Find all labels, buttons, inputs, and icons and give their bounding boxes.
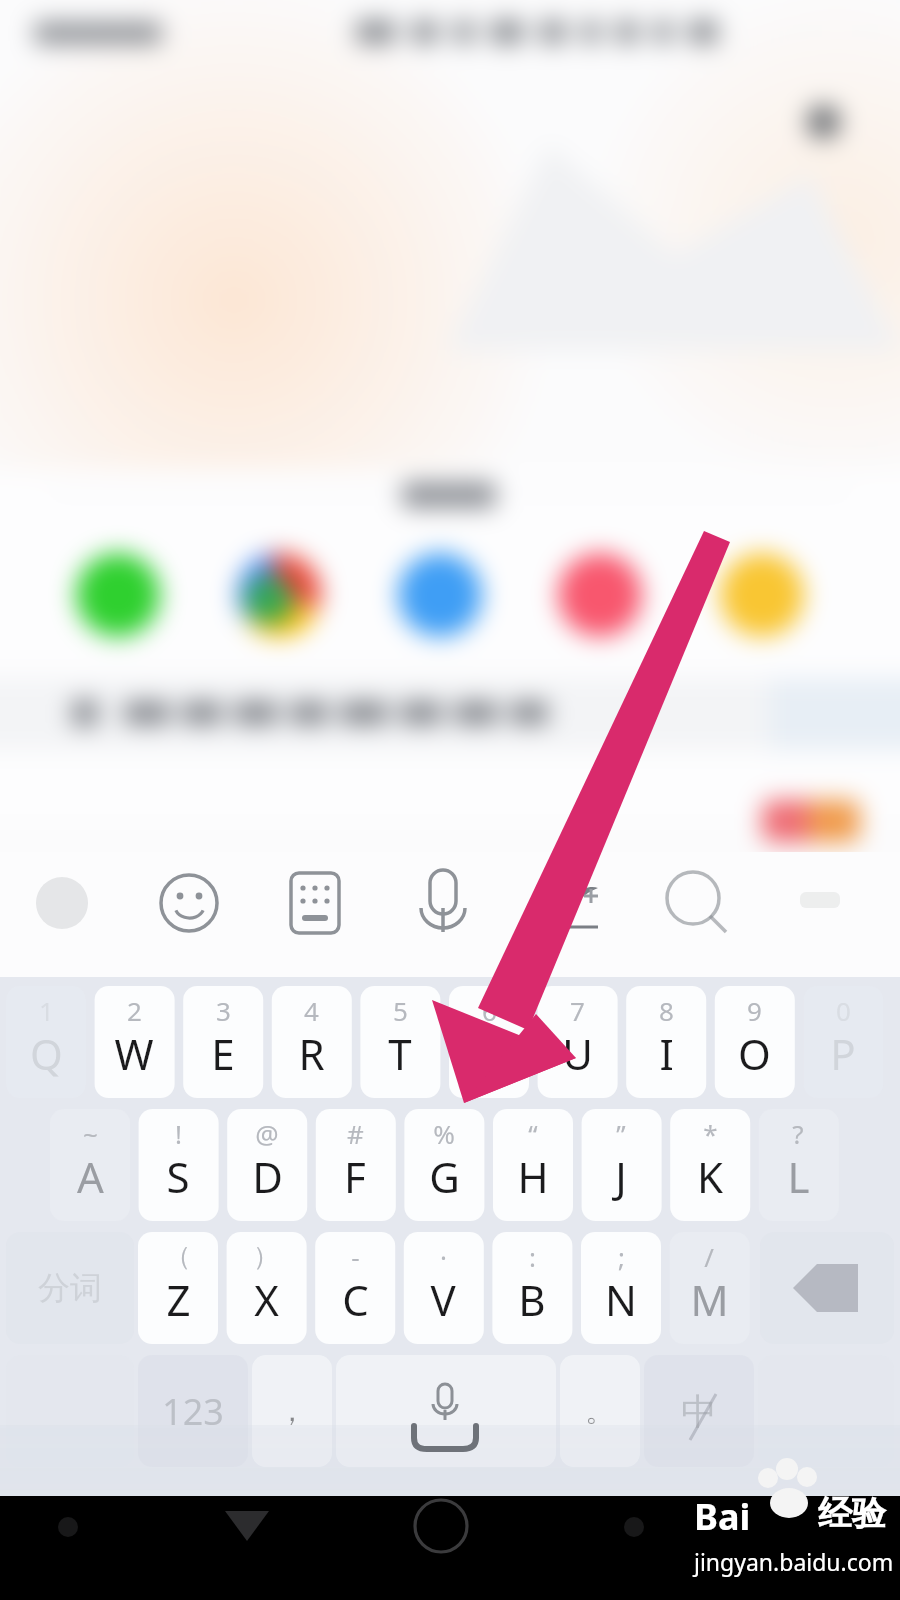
staticText: X [254,1271,279,1328]
button[interactable]: Y [449,986,529,1098]
button[interactable]: Home [391,1496,491,1600]
button[interactable]: Keyboard layout [271,855,359,975]
staticText: O [738,1025,771,1082]
staticText: 5 [393,993,408,1027]
button[interactable]: 中 [644,1355,754,1467]
button[interactable]: S [138,1109,218,1221]
button[interactable]: D [227,1109,307,1221]
staticText: W [114,1025,154,1082]
staticText: U [562,1025,593,1082]
staticText: K [697,1148,723,1205]
staticText: Bai [694,1492,751,1541]
button[interactable]: V [403,1232,483,1344]
button[interactable]: Space [336,1355,556,1467]
button[interactable]: Search [653,855,741,975]
staticText: H [517,1148,549,1205]
button[interactable]: U [537,986,617,1098]
staticText: Z [166,1271,191,1328]
button[interactable]: 。 [560,1355,640,1467]
staticText: C [342,1271,369,1328]
staticText: # [347,1116,364,1150]
staticText: P [830,1025,856,1082]
button[interactable]: ， [252,1355,332,1467]
staticText: 中 [681,1389,717,1434]
staticText: ， [277,1392,307,1430]
staticText: 123 [162,1387,224,1436]
staticText: R [298,1025,325,1082]
staticText: 6 [482,993,497,1027]
staticText: （ [165,1240,191,1273]
staticText: I [659,1025,674,1082]
button[interactable]: Menu [584,1496,684,1600]
staticText: G [429,1148,460,1205]
staticText: M [690,1271,729,1328]
staticText: ） [253,1240,279,1273]
button[interactable]: Handwriting [530,855,618,975]
staticText: 分词 [38,1268,102,1308]
button[interactable]: 123 [138,1355,248,1467]
staticText: : [529,1239,536,1273]
button[interactable]: L [758,1109,838,1221]
button[interactable]: J [581,1109,661,1221]
staticText: T [388,1025,412,1082]
staticText: % [433,1116,455,1150]
staticText: 4 [304,993,319,1027]
staticText: jingyan.baidu.com [694,1546,894,1577]
button[interactable]: P [803,986,883,1098]
staticText: 9 [747,993,762,1027]
staticText: ~ [83,1116,98,1150]
staticText: Q [30,1025,63,1082]
button[interactable]: Voice input [399,855,487,975]
button[interactable]: X [226,1232,306,1344]
button[interactable]: W [94,986,174,1098]
button[interactable]: More [776,855,864,975]
button[interactable]: R [271,986,351,1098]
button[interactable]: Settings [18,855,106,975]
staticText: N [605,1271,637,1328]
button[interactable]: Delete [760,1232,894,1344]
button[interactable]: A [50,1109,130,1221]
staticText: 7 [570,993,585,1027]
button[interactable]: Emoji [145,855,233,975]
staticText: V [430,1271,456,1328]
staticText: / [704,1239,714,1273]
staticText: “ [528,1116,538,1150]
button[interactable]: N [581,1232,661,1344]
button[interactable]: Back [18,1496,118,1600]
button[interactable]: Recents [197,1496,297,1600]
button[interactable]: F [315,1109,395,1221]
button[interactable]: K [670,1109,750,1221]
staticText: 2 [127,993,142,1027]
staticText: 1 [39,993,54,1027]
button[interactable]: H [493,1109,573,1221]
staticText: J [615,1148,627,1205]
button[interactable]: I [626,986,706,1098]
staticText: B [518,1271,546,1328]
button[interactable]: O [714,986,794,1098]
staticText: 0 [836,993,851,1027]
staticText: F [344,1148,366,1205]
staticText: L [787,1148,810,1205]
staticText: ! [175,1116,182,1150]
button[interactable]: T [360,986,440,1098]
button[interactable]: Z [138,1232,218,1344]
button[interactable]: 分词 [6,1232,134,1344]
button[interactable]: B [492,1232,572,1344]
button[interactable]: M [669,1232,749,1344]
staticText: S [166,1148,190,1205]
staticText: 3 [216,993,231,1027]
staticText: E [211,1025,235,1082]
staticText: A [77,1148,104,1205]
staticText: ” [616,1116,626,1150]
button[interactable]: C [315,1232,395,1344]
button[interactable]: Q [6,986,86,1098]
staticText: · [440,1239,447,1273]
staticText: ? [792,1116,804,1150]
button[interactable]: E [183,986,263,1098]
button[interactable]: G [404,1109,484,1221]
staticText: 。 [585,1392,615,1430]
staticText: ; [618,1239,625,1273]
staticText: Y [477,1025,501,1082]
